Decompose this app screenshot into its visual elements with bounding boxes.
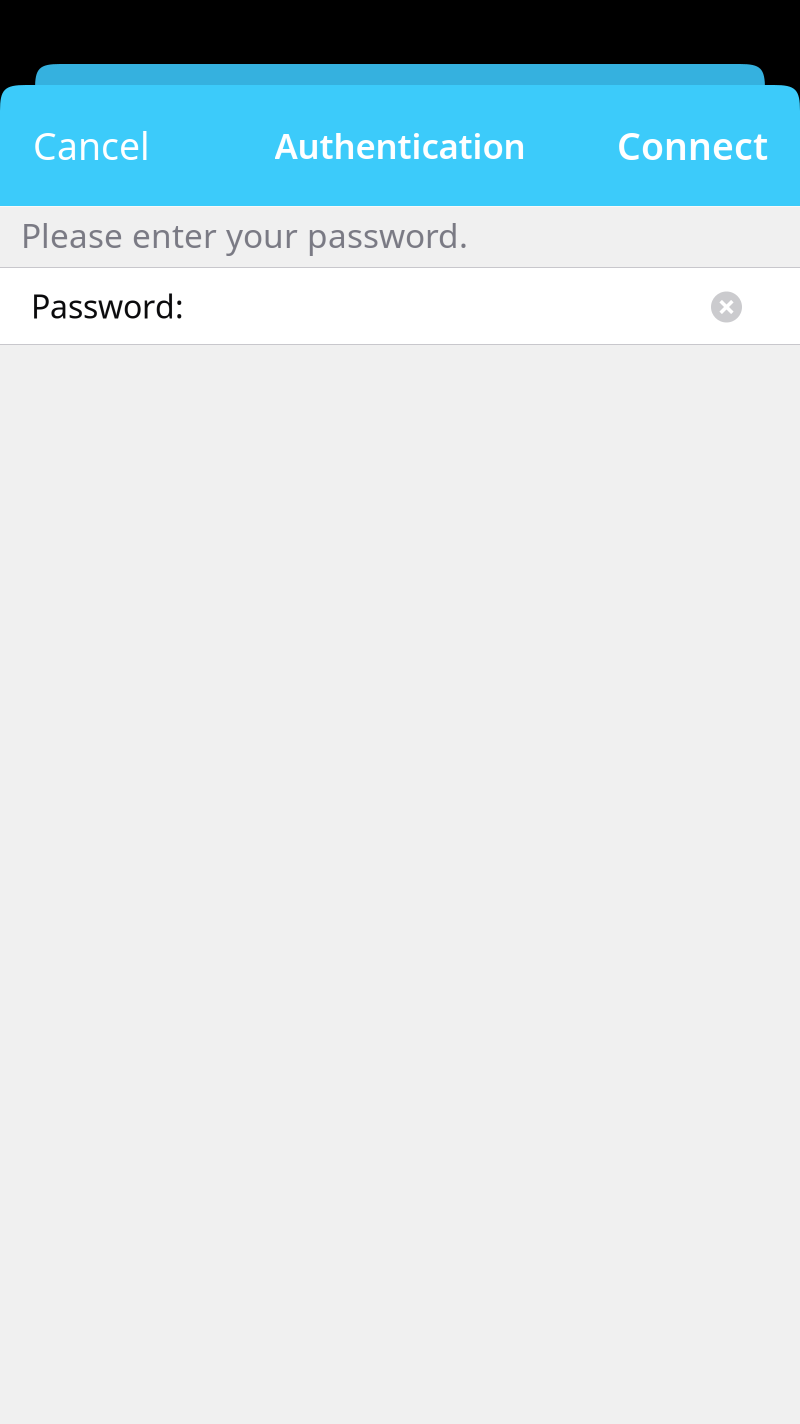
staticText: Connect	[617, 121, 768, 170]
button[interactable]: Cancel	[0, 97, 168, 194]
staticText: Cancel	[33, 121, 150, 170]
staticText: Password:	[31, 285, 184, 327]
staticText: Please enter your password.	[21, 213, 468, 257]
button[interactable]: Password:	[0, 268, 689, 344]
button[interactable]: Clear text	[689, 268, 800, 343]
button[interactable]: Connect	[599, 97, 800, 194]
staticText: Authentication	[274, 122, 525, 168]
